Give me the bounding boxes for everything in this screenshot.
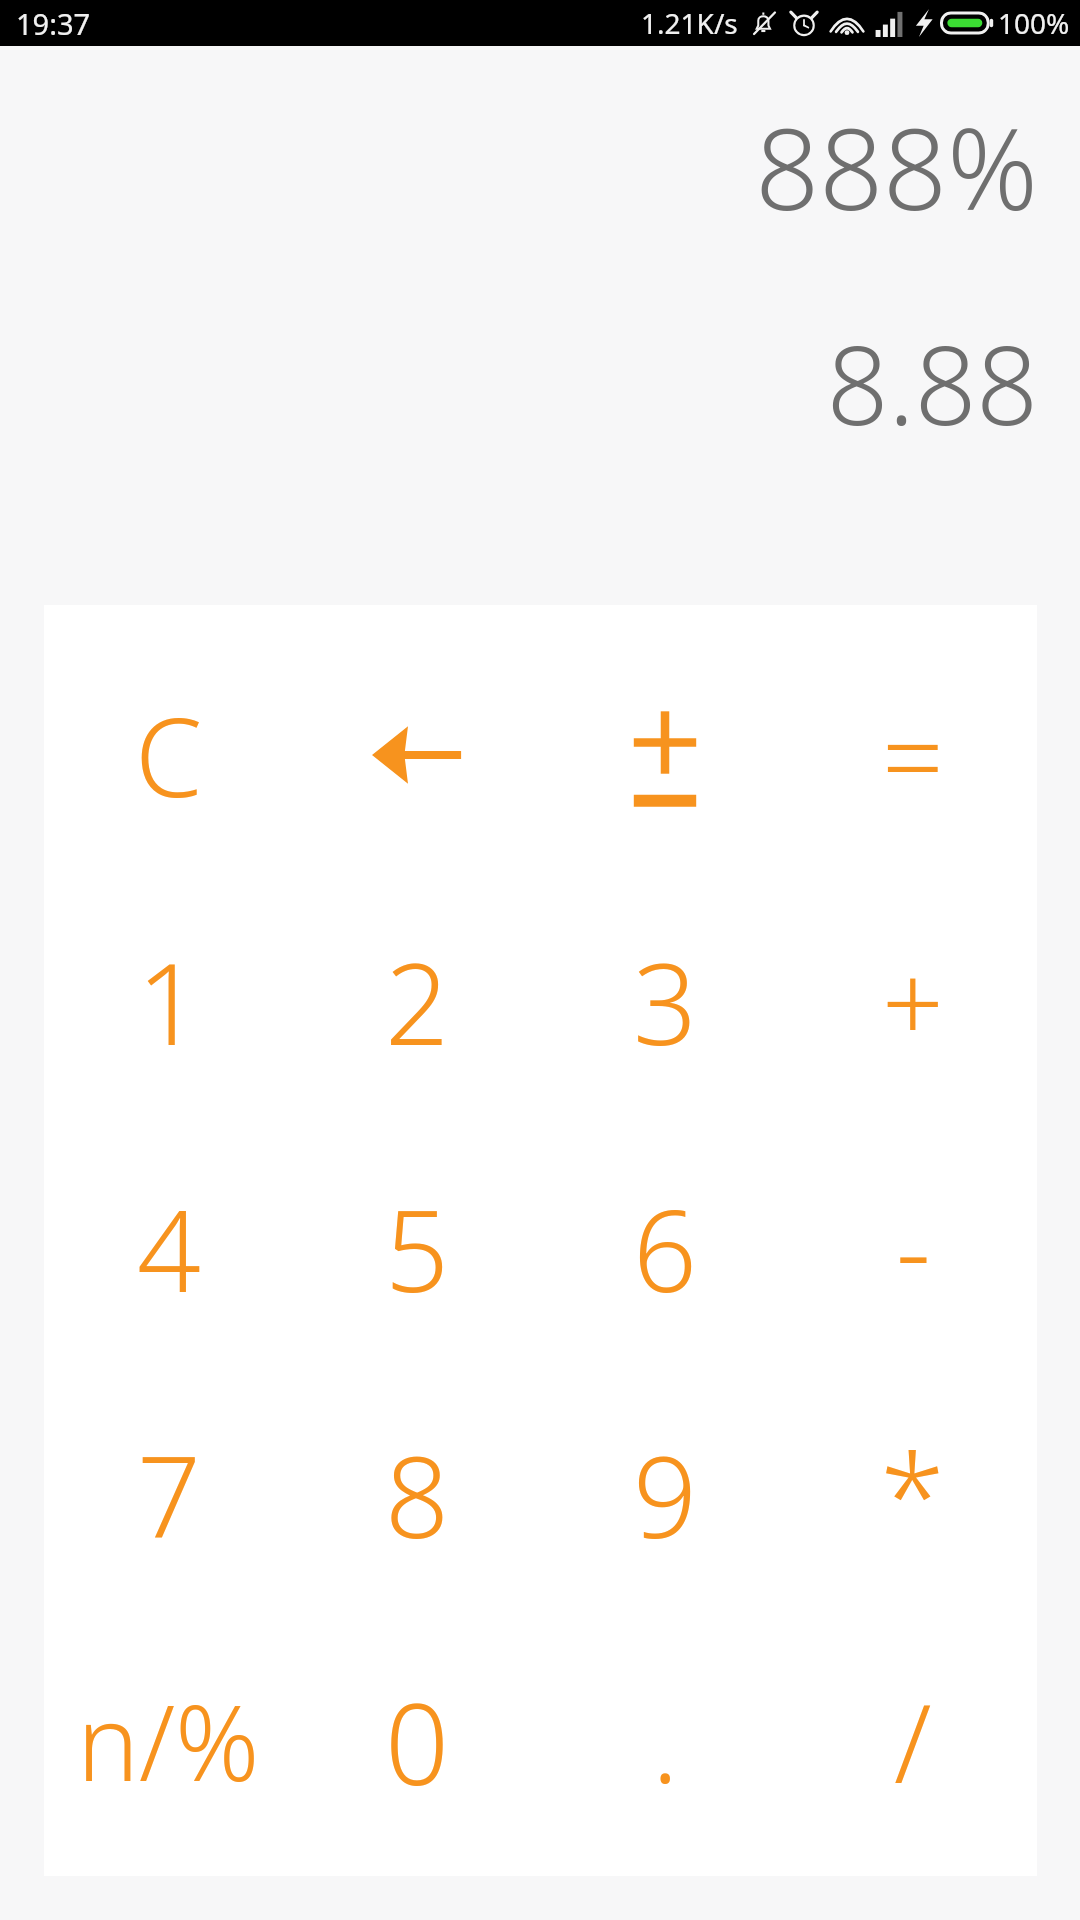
- staticText: 9: [633, 1418, 697, 1571]
- button[interactable]: 6: [541, 1133, 789, 1363]
- staticText: /: [894, 1668, 932, 1815]
- staticText: 19:37: [16, 4, 91, 43]
- button[interactable]: -: [789, 1133, 1037, 1363]
- staticText: n/%: [77, 1670, 260, 1812]
- staticText: 6: [633, 1172, 697, 1325]
- button[interactable]: 8: [293, 1379, 541, 1609]
- button[interactable]: 3: [541, 886, 789, 1116]
- button[interactable]: 5: [293, 1133, 541, 1363]
- staticText: C: [135, 682, 203, 829]
- staticText: 5: [385, 1172, 449, 1325]
- button[interactable]: .: [541, 1626, 789, 1856]
- button[interactable]: C: [44, 640, 293, 870]
- staticText: 7: [137, 1418, 201, 1571]
- button[interactable]: Toggle sign: [541, 640, 789, 870]
- button[interactable]: Backspace: [293, 640, 541, 870]
- button[interactable]: n/%: [44, 1626, 293, 1856]
- button[interactable]: 7: [44, 1379, 293, 1609]
- staticText: 0: [385, 1665, 449, 1818]
- button[interactable]: 9: [541, 1379, 789, 1609]
- button[interactable]: =: [789, 640, 1037, 870]
- staticText: *: [880, 1414, 946, 1575]
- button[interactable]: 2: [293, 886, 541, 1116]
- staticText: 2: [385, 925, 449, 1078]
- button[interactable]: /: [789, 1626, 1037, 1856]
- staticText: 4: [137, 1172, 201, 1325]
- button[interactable]: 4: [44, 1133, 293, 1363]
- staticText: =: [882, 682, 944, 829]
- staticText: 888%: [0, 90, 1038, 243]
- button[interactable]: 1: [44, 886, 293, 1116]
- staticText: 8.88: [0, 310, 1038, 457]
- staticText: 8: [385, 1418, 449, 1571]
- button[interactable]: +: [789, 886, 1037, 1116]
- staticText: .: [652, 1668, 679, 1815]
- staticText: 100%: [998, 4, 1070, 42]
- button[interactable]: 0: [293, 1626, 541, 1856]
- button[interactable]: *: [789, 1379, 1037, 1609]
- staticText: 3: [633, 925, 697, 1078]
- staticText: -: [896, 1175, 931, 1322]
- staticText: 1: [137, 925, 201, 1078]
- staticText: +: [882, 928, 944, 1075]
- staticText: 1.21K/s: [641, 4, 738, 42]
